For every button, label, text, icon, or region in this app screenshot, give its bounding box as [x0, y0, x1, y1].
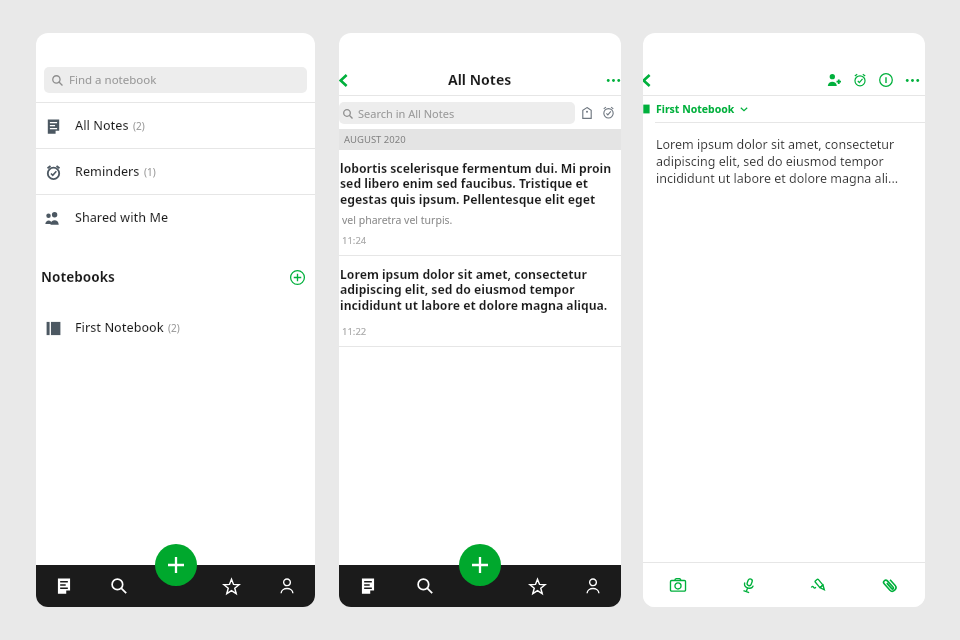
button[interactable]: Account — [565, 565, 621, 607]
button[interactable]: Account — [259, 565, 315, 607]
staticText: Shared with Me — [75, 209, 169, 226]
button[interactable]: Favorites — [509, 565, 565, 607]
button[interactable]: New note — [459, 544, 501, 586]
button[interactable]: First Notebook — [643, 96, 925, 122]
staticText: All Notes — [75, 117, 129, 134]
staticText: First Notebook — [75, 319, 164, 336]
button[interactable]: Search — [396, 565, 453, 607]
button[interactable]: Note info — [873, 67, 899, 93]
button[interactable]: All Notes — [36, 103, 315, 148]
button[interactable]: Reminders — [597, 101, 620, 124]
button[interactable]: Search — [91, 565, 147, 607]
button[interactable]: Attach file — [854, 563, 925, 607]
staticText: Reminders — [75, 163, 140, 180]
staticText: (1) — [144, 165, 156, 179]
staticText: All Notes — [448, 70, 512, 89]
button[interactable]: Record audio — [713, 563, 783, 607]
button[interactable]: More options — [899, 67, 925, 93]
button[interactable]: lobortis scelerisque fermentum dui. Mi p… — [339, 150, 621, 255]
button[interactable]: Find a notebook — [44, 67, 307, 93]
button[interactable]: Tags — [575, 101, 598, 124]
button[interactable]: Add notebook — [284, 264, 310, 290]
staticText: Notebooks — [41, 268, 115, 286]
staticText: First Notebook — [656, 102, 735, 116]
button[interactable]: Notes — [339, 565, 396, 607]
button[interactable]: New note — [155, 544, 197, 586]
button[interactable]: Set reminder — [847, 67, 873, 93]
button[interactable]: Camera — [643, 563, 713, 607]
staticText: Search in All Notes — [358, 106, 455, 121]
staticText: vel pharetra vel turpis. — [342, 213, 453, 227]
button[interactable]: Reminders — [36, 149, 315, 194]
button[interactable]: Lorem ipsum dolor sit amet, consectetur … — [339, 256, 621, 346]
staticText: 11:22 — [342, 325, 367, 338]
staticText: (2) — [133, 119, 145, 133]
button[interactable]: Handwriting — [783, 563, 854, 607]
button[interactable]: Shared with Me — [36, 195, 315, 240]
staticText: AUGUST 2020 — [344, 133, 406, 146]
staticText: Find a notebook — [69, 72, 157, 88]
button[interactable]: Share with others — [821, 67, 847, 93]
staticText: 11:24 — [342, 234, 367, 247]
staticText: Lorem ipsum dolor sit amet, consectetur … — [656, 136, 912, 187]
button[interactable]: Favorites — [203, 565, 259, 607]
button[interactable]: Back — [643, 69, 657, 91]
button[interactable]: First Notebook — [36, 305, 315, 350]
staticText: lobortis scelerisque fermentum dui. Mi p… — [340, 160, 621, 208]
button[interactable]: Search in All Notes — [339, 102, 575, 124]
button[interactable]: More options — [602, 69, 621, 91]
button[interactable]: Back — [339, 69, 354, 91]
staticText: (2) — [168, 321, 180, 335]
staticText: Lorem ipsum dolor sit amet, consectetur … — [340, 266, 621, 314]
button[interactable]: Notes — [36, 565, 91, 607]
